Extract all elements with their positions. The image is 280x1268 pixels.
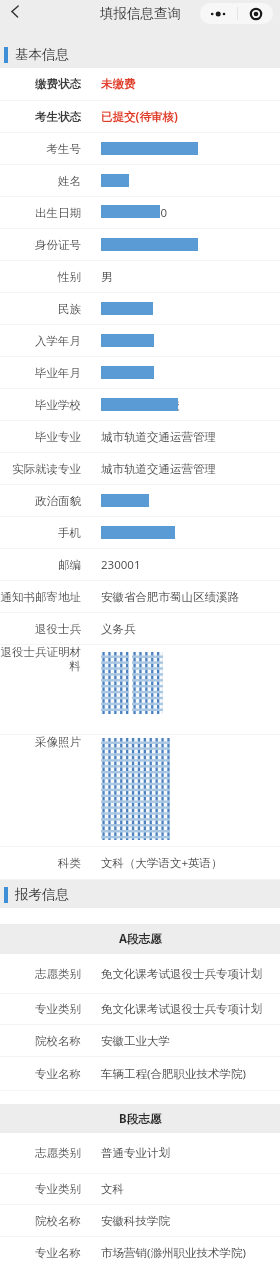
button[interactable]: 毕业专业 (0, 421, 280, 452)
button[interactable]: More (200, 3, 237, 24)
staticText: 基本信息 (15, 46, 69, 63)
button[interactable]: 院校名称 (0, 1025, 280, 1056)
button[interactable]: 出生日期 (0, 197, 280, 228)
staticText: 市场营销(滁州职业技术学院) (101, 1245, 246, 1261)
staticText: 毕业学校 (0, 398, 81, 412)
button[interactable]: 专业名称 (0, 1237, 280, 1268)
button[interactable]: 退役士兵证明材料 (0, 645, 280, 734)
button[interactable]: 邮编 (0, 549, 280, 580)
staticText: 免文化课考试退役士兵专项计划 (101, 967, 262, 981)
staticText: A段志愿 (119, 931, 162, 947)
staticText: 通知书邮寄地址 (0, 590, 81, 604)
button[interactable]: 政治面貌 (0, 485, 280, 516)
staticText: 文科（大学语文+英语） (101, 855, 223, 871)
staticText: 专业类别 (0, 1002, 81, 1016)
staticText: 邮编 (0, 558, 81, 572)
staticText: 城市轨道交通运营管理 (101, 462, 216, 476)
staticText: 专业名称 (0, 1246, 81, 1260)
staticText: 毕业专业 (0, 430, 81, 444)
button[interactable]: 身份证号 (0, 229, 280, 260)
staticText: 入学年月 (0, 334, 81, 348)
staticText: 专业类别 (0, 1182, 81, 1196)
staticText: 普通专业计划 (101, 1146, 170, 1160)
staticText: 实际就读专业 (0, 462, 81, 476)
button[interactable]: 民族 (0, 293, 280, 324)
staticText: 报考信息 (15, 886, 69, 903)
staticText: 专业名称 (0, 1067, 81, 1081)
button[interactable]: 专业类别 (0, 1174, 280, 1204)
button[interactable]: 缴费状态 (0, 68, 280, 100)
staticText: 毕业年月 (0, 366, 81, 380)
staticText: 未缴费 (101, 77, 136, 91)
button[interactable]: Back (6, 4, 26, 24)
staticText: 安徽工业大学 (101, 1034, 170, 1048)
button[interactable]: Close (238, 3, 273, 24)
button[interactable]: 姓名 (0, 165, 280, 196)
staticText: 城市轨道交通运营管理 (101, 430, 216, 444)
staticText: 姓名 (0, 174, 81, 188)
button[interactable]: 手机 (0, 517, 280, 548)
button[interactable]: 退役士兵 (0, 613, 280, 644)
staticText: 科类 (0, 856, 81, 870)
button[interactable]: 实际就读专业 (0, 453, 280, 484)
staticText: 已提交(待审核) (101, 109, 178, 125)
staticText: 安徽省合肥市蜀山区绩溪路 (101, 590, 239, 604)
button[interactable]: 入学年月 (0, 325, 280, 356)
button[interactable]: 院校名称 (0, 1205, 280, 1236)
staticText: 学校 (157, 398, 180, 412)
button[interactable]: 毕业学校 (0, 389, 280, 420)
button[interactable]: 毕业年月 (0, 357, 280, 388)
staticText: 出生日期 (0, 206, 81, 220)
staticText: 考生号 (0, 142, 81, 156)
staticText: B段志愿 (119, 1111, 162, 1127)
staticText: 民族 (0, 302, 81, 316)
staticText: 义务兵 (101, 622, 136, 636)
staticText: 2000-01-10 (107, 205, 168, 221)
staticText: 志愿类别 (0, 967, 81, 981)
button[interactable]: 专业名称 (0, 1057, 280, 1090)
staticText: 缴费状态 (0, 77, 81, 91)
staticText: 退役士兵 (0, 622, 81, 636)
staticText: 男 (101, 270, 113, 284)
button[interactable]: 专业类别 (0, 994, 280, 1024)
button[interactable]: 志愿类别 (0, 1133, 280, 1173)
staticText: 院校名称 (0, 1034, 81, 1048)
staticText: 志愿类别 (0, 1146, 81, 1160)
staticText: 政治面貌 (0, 494, 81, 508)
staticText: 免文化课考试退役士兵专项计划 (101, 1002, 262, 1016)
button[interactable]: 考生号 (0, 133, 280, 164)
staticText: 安徽科技学院 (101, 1214, 170, 1228)
button[interactable]: 性别 (0, 261, 280, 292)
staticText: 文科 (101, 1182, 124, 1196)
button[interactable]: 通知书邮寄地址 (0, 581, 280, 612)
staticText: 身份证号 (0, 238, 81, 252)
staticText: 车辆工程(合肥职业技术学院) (101, 1066, 246, 1082)
staticText: 230001 (101, 557, 141, 573)
button[interactable]: 志愿类别 (0, 954, 280, 993)
staticText: 性别 (0, 270, 81, 284)
staticText: 填报信息查询 (100, 5, 181, 22)
staticText: 退役士兵证明材料 (0, 645, 81, 674)
staticText: 手机 (0, 526, 81, 540)
button[interactable]: 考生状态 (0, 101, 280, 132)
staticText: 院校名称 (0, 1214, 81, 1228)
button[interactable]: 科类 (0, 847, 280, 879)
staticText: 采像照片 (0, 735, 81, 749)
button[interactable]: 采像照片 (0, 735, 280, 846)
staticText: 考生状态 (0, 110, 81, 124)
